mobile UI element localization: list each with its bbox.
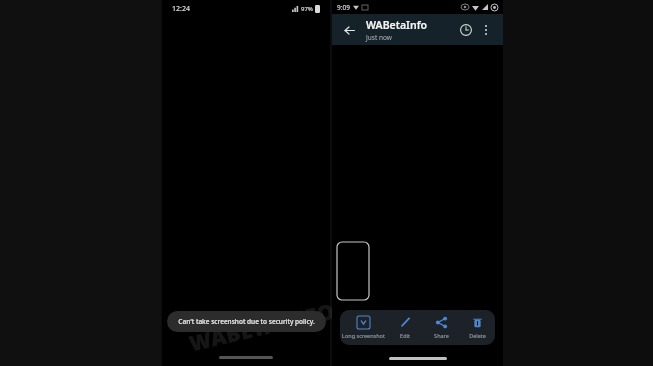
staticText: 9:09 — [337, 3, 350, 12]
button[interactable]: Info — [456, 20, 476, 40]
button[interactable]: Edit — [387, 315, 423, 340]
button[interactable]: More options — [476, 20, 496, 40]
staticText: WABetaInfo — [366, 18, 428, 32]
staticText: WABETAINFO — [187, 297, 337, 358]
staticText: 97% — [301, 5, 313, 13]
button[interactable]: Delete — [459, 315, 495, 340]
staticText: Just now — [366, 33, 392, 42]
staticText: Can't take screenshot due to security po… — [178, 317, 315, 326]
staticText: Edit — [400, 332, 410, 339]
staticText: Long screenshot — [342, 332, 385, 339]
button[interactable]: Share — [423, 315, 459, 340]
button[interactable]: Long screenshot — [340, 315, 387, 340]
staticText: Share — [434, 332, 449, 339]
staticText: Delete — [469, 332, 486, 339]
staticText: 12:24 — [172, 4, 190, 14]
button[interactable]: Can't take screenshot due to security po… — [167, 311, 326, 332]
button[interactable]: Screenshot preview — [337, 242, 369, 300]
button[interactable]: Back — [339, 20, 359, 40]
